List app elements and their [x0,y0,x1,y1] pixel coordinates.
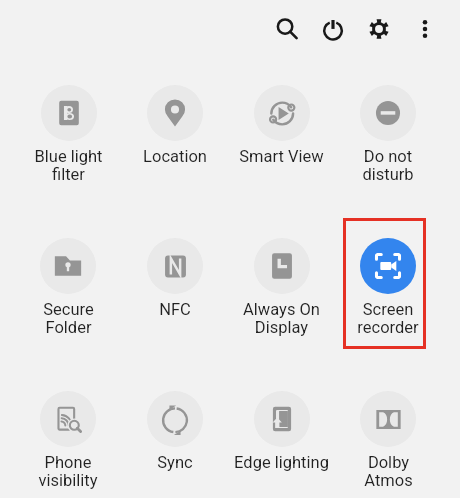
button[interactable]: Settings [359,9,399,49]
button[interactable]: NFC [123,238,227,319]
button[interactable]: Power [313,9,353,49]
button[interactable]: Always On Display [229,238,333,337]
button[interactable]: Phone visibility [16,391,120,490]
button[interactable]: Location [123,85,227,166]
staticText: Secure Folder [43,300,94,337]
button[interactable]: Smart View [229,85,333,166]
staticText: Screen recorder [357,300,419,337]
staticText: Do not disturb [362,147,414,184]
staticText: Always On Display [243,300,320,337]
button[interactable]: Do not disturb [336,85,440,184]
button[interactable]: Screen recorder [336,238,440,337]
button[interactable]: More options [405,9,445,49]
staticText: Smart View [239,147,324,166]
staticText: Location [143,147,207,166]
staticText: NFC [159,300,191,319]
button[interactable]: Sync [123,391,227,472]
button[interactable]: Dolby Atmos [336,391,440,490]
button[interactable]: Search [267,9,307,49]
button[interactable]: Edge lighting [229,391,333,472]
staticText: Dolby Atmos [364,453,413,490]
staticText: Edge lighting [234,453,329,472]
staticText: Sync [157,453,193,472]
staticText: Blue light filter [34,147,103,184]
button[interactable]: Blue light filter [16,85,120,184]
staticText: Phone visibility [38,453,98,490]
button[interactable]: Secure Folder [16,238,120,337]
